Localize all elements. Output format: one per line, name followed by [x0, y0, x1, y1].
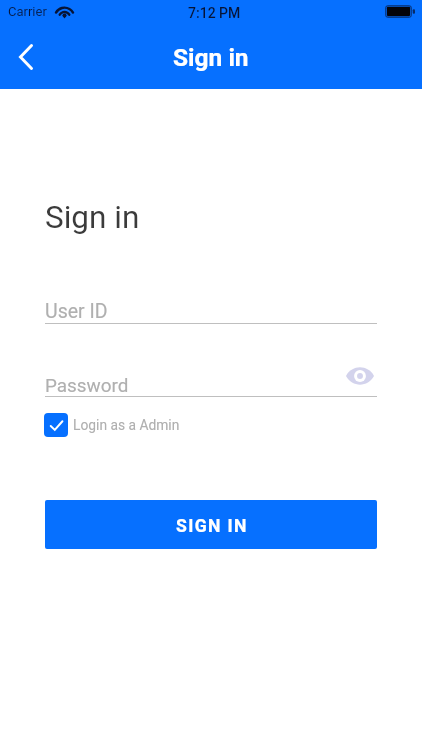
- button[interactable]: Password: [45, 370, 377, 397]
- button[interactable]: Back: [3, 34, 49, 80]
- staticText: Sign in: [173, 43, 249, 72]
- staticText: User ID: [45, 300, 108, 323]
- button[interactable]: User ID: [45, 298, 377, 324]
- staticText: Sign in: [45, 199, 140, 236]
- staticText: Login as a Admin: [73, 417, 180, 433]
- button[interactable]: Login as a Admin: [44, 412, 180, 437]
- staticText: Password: [45, 374, 129, 396]
- button[interactable]: SIGN IN: [45, 500, 377, 549]
- staticText: 7:12 PM: [188, 5, 241, 21]
- staticText: Carrier: [8, 4, 47, 19]
- button[interactable]: Show password: [343, 358, 377, 394]
- staticText: SIGN IN: [176, 516, 248, 537]
